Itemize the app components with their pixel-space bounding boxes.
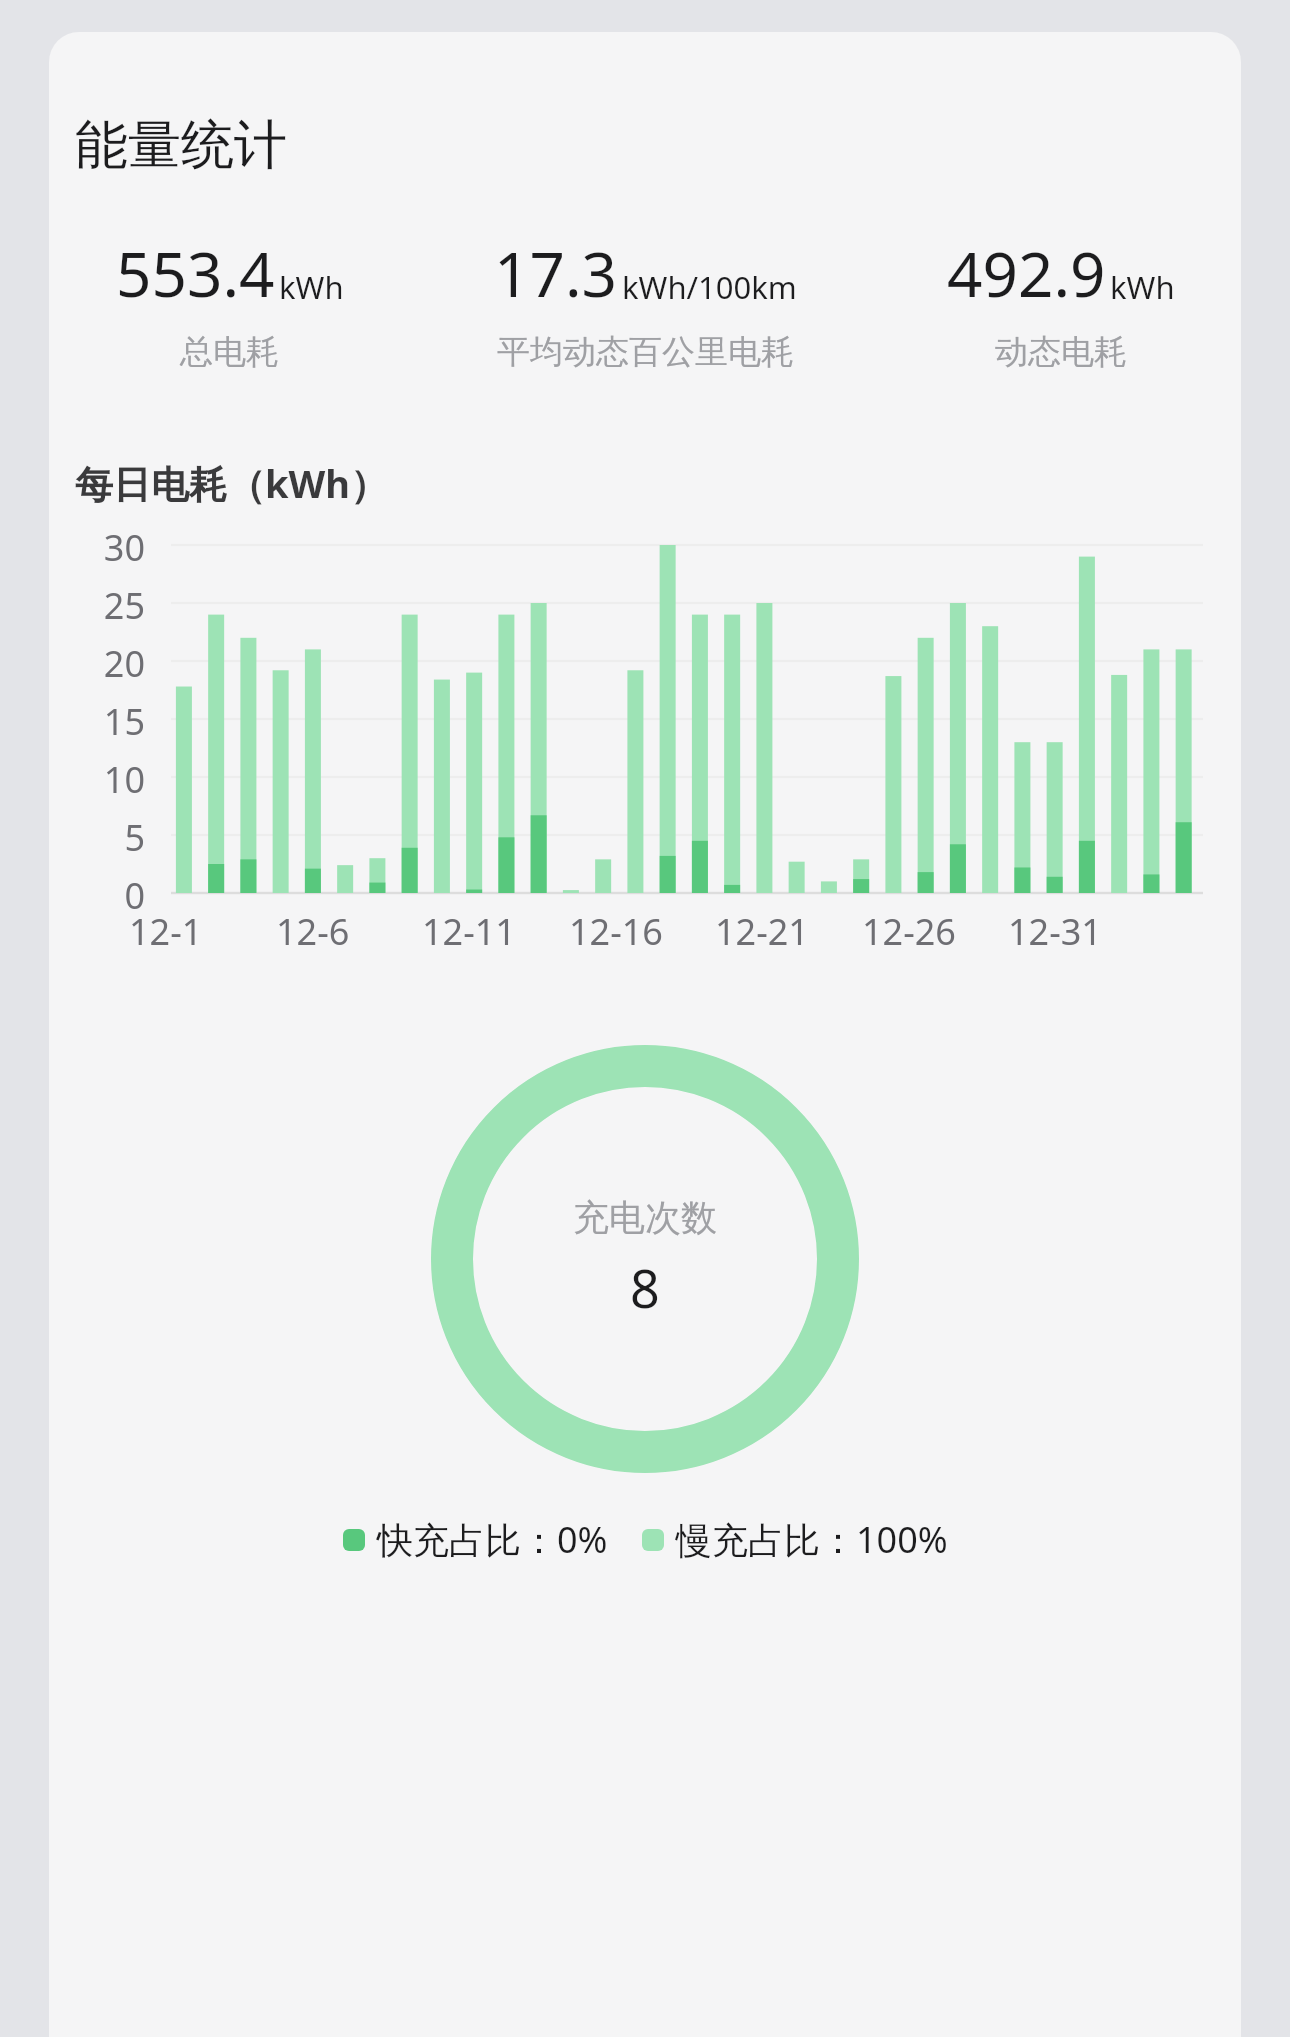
staticText: 12-16	[569, 907, 663, 956]
staticText: kWh	[1110, 266, 1175, 308]
staticText: 能量统计	[75, 112, 287, 179]
staticText: 快充占比：0%	[377, 1515, 608, 1564]
staticText: 12-1	[129, 907, 203, 956]
staticText: 12-21	[715, 907, 809, 956]
staticText: 12-6	[276, 907, 350, 956]
staticText: 12-26	[862, 907, 956, 956]
staticText: 平均动态百公里电耗	[497, 331, 794, 373]
button[interactable]: 快充占比：0%	[343, 1515, 608, 1564]
button[interactable]: 充电次数	[431, 1045, 859, 1473]
staticText: 20	[49, 639, 145, 688]
button[interactable]: 553.4	[49, 231, 410, 373]
staticText: 5	[49, 813, 145, 862]
staticText: kWh/100km	[622, 266, 797, 308]
button[interactable]: 492.9	[880, 231, 1241, 373]
staticText: 492.9	[947, 231, 1106, 315]
staticText: 30	[49, 523, 145, 572]
staticText: 每日电耗（kWh）	[75, 457, 389, 509]
staticText: 10	[49, 755, 145, 804]
staticText: 充电次数	[573, 1195, 717, 1240]
staticText: 25	[49, 581, 145, 630]
staticText: 12-11	[422, 907, 516, 956]
staticText: 17.3	[494, 231, 618, 315]
staticText: 15	[49, 697, 145, 746]
staticText: kWh	[279, 266, 344, 308]
staticText: 12-31	[1008, 907, 1102, 956]
staticText: 0	[49, 871, 145, 920]
button[interactable]: 慢充占比：100%	[642, 1515, 948, 1564]
staticText: 总电耗	[180, 331, 279, 373]
staticText: 动态电耗	[995, 331, 1127, 373]
staticText: 8	[630, 1252, 660, 1323]
staticText: 慢充占比：100%	[676, 1515, 948, 1564]
staticText: 553.4	[116, 231, 275, 315]
button[interactable]: 17.3	[410, 231, 880, 373]
